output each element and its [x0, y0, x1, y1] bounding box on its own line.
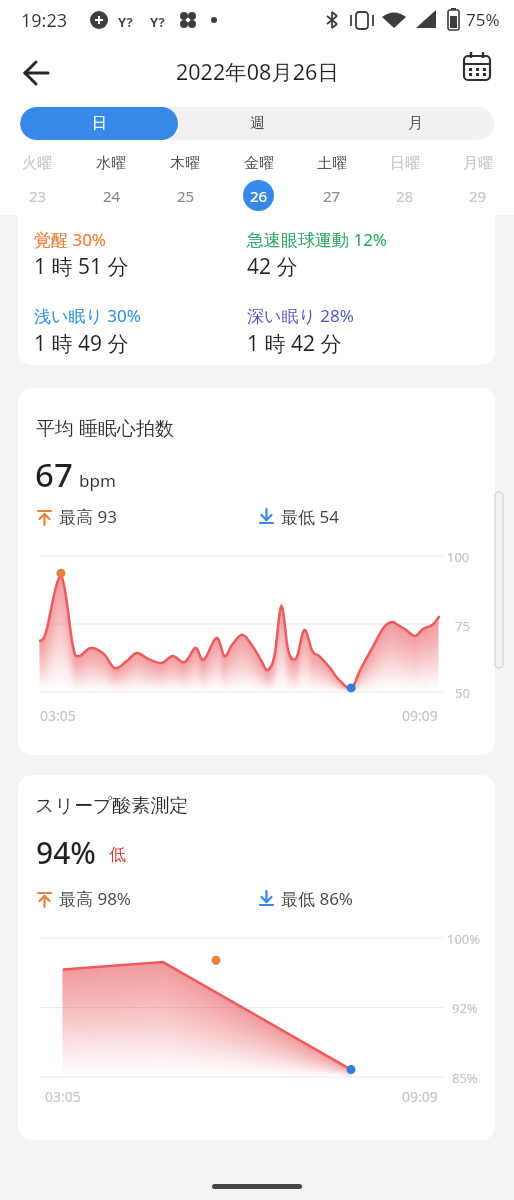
staticText: 100 — [447, 548, 470, 566]
staticText: 09:09 — [402, 1087, 438, 1106]
button[interactable]: 土曜 — [295, 150, 368, 215]
staticText: 75 — [455, 617, 470, 635]
staticText: 26 — [250, 186, 268, 206]
staticText: 03:05 — [45, 1087, 81, 1106]
button[interactable]: 週 — [178, 107, 336, 140]
staticText: 28 — [396, 186, 414, 206]
staticText: 急速眼球運動 12% — [247, 228, 387, 251]
staticText: 1 時 49 分 — [34, 329, 129, 358]
button[interactable] — [12, 44, 60, 92]
staticText: 67 — [35, 452, 73, 497]
button[interactable]: 日 — [20, 107, 178, 140]
staticText: 92% — [452, 999, 478, 1017]
staticText: 85% — [452, 1069, 478, 1087]
staticText: 09:09 — [402, 706, 438, 725]
staticText: 土曜 — [317, 154, 347, 173]
staticText: 23 — [29, 186, 47, 206]
button[interactable] — [452, 44, 500, 92]
staticText: 42 分 — [247, 252, 298, 281]
staticText: bpm — [79, 469, 116, 492]
staticText: 木曜 — [170, 154, 200, 173]
staticText: 2022年08月26日 — [176, 57, 339, 86]
staticText: 水曜 — [96, 154, 126, 173]
staticText: 金曜 — [244, 154, 274, 173]
staticText: 最低 86% — [281, 887, 353, 910]
staticText: 火曜 — [22, 154, 52, 173]
staticText: 月 — [408, 114, 423, 133]
staticText: 25 — [177, 186, 195, 206]
staticText: 27 — [323, 186, 341, 206]
staticText: 03:05 — [40, 706, 76, 725]
staticText: 日曜 — [390, 154, 420, 173]
staticText: 1 時 51 分 — [34, 252, 129, 281]
staticText: 29 — [469, 186, 487, 206]
staticText: 19:23 — [21, 8, 68, 33]
staticText: 最高 93 — [59, 505, 117, 528]
staticText: Y? — [118, 13, 133, 31]
staticText: 深い眠り 28% — [247, 304, 354, 327]
staticText: 最低 54 — [281, 505, 339, 528]
button[interactable]: 火曜 — [0, 150, 74, 215]
staticText: 1 時 42 分 — [247, 329, 342, 358]
staticText: 週 — [250, 114, 265, 133]
staticText: 50 — [455, 684, 470, 702]
button[interactable]: 木曜 — [148, 150, 222, 215]
staticText: 低 — [109, 844, 126, 865]
staticText: 日 — [92, 114, 107, 133]
staticText: スリープ酸素測定 — [35, 794, 189, 818]
staticText: 覚醒 30% — [34, 228, 106, 251]
staticText: 平均 睡眠心拍数 — [36, 415, 174, 441]
button[interactable]: 水曜 — [74, 150, 148, 215]
staticText: 月曜 — [463, 154, 493, 173]
button[interactable]: 月曜 — [441, 150, 514, 215]
button[interactable]: 金曜 — [222, 150, 295, 215]
staticText: 最高 98% — [59, 887, 131, 910]
staticText: 75% — [466, 8, 500, 31]
staticText: Y? — [150, 13, 165, 31]
staticText: 100% — [447, 930, 481, 948]
staticText: 浅い眠り 30% — [34, 304, 141, 327]
staticText: 24 — [103, 186, 121, 206]
button[interactable]: 月 — [336, 107, 494, 140]
button[interactable]: 日曜 — [368, 150, 441, 215]
staticText: 94% — [36, 832, 96, 873]
